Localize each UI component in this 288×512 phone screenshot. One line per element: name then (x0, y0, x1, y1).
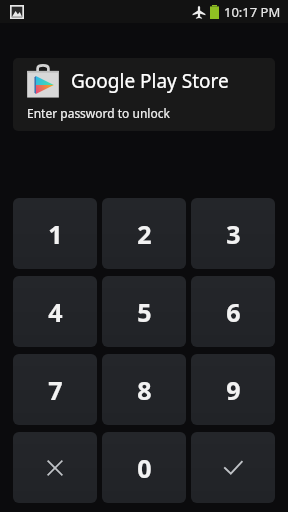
staticText: 4 (48, 295, 63, 329)
button[interactable]: 9 (191, 354, 275, 425)
button[interactable]: 7 (13, 354, 97, 425)
staticText: 0 (137, 451, 152, 485)
staticText: 9 (226, 373, 241, 407)
button[interactable]: Confirm (191, 432, 275, 503)
button[interactable]: 0 (102, 432, 186, 503)
staticText: 5 (137, 295, 152, 329)
staticText: 1 (48, 217, 63, 251)
button[interactable]: 1 (13, 198, 97, 269)
button[interactable]: 2 (102, 198, 186, 269)
staticText: 7 (48, 373, 63, 407)
button[interactable]: 4 (13, 276, 97, 347)
staticText: 6 (226, 295, 241, 329)
staticText: 3 (226, 217, 241, 251)
button[interactable]: 5 (102, 276, 186, 347)
button[interactable]: 8 (102, 354, 186, 425)
staticText: Enter password to unlock (27, 105, 170, 121)
button[interactable]: Cancel (13, 432, 97, 503)
staticText: 2 (137, 217, 152, 251)
staticText: 8 (137, 373, 152, 407)
button[interactable]: 3 (191, 198, 275, 269)
button[interactable]: Google Play Store (13, 58, 275, 131)
button[interactable]: 6 (191, 276, 275, 347)
staticText: 10:17 PM (224, 3, 281, 21)
staticText: Google Play Store (71, 68, 229, 94)
